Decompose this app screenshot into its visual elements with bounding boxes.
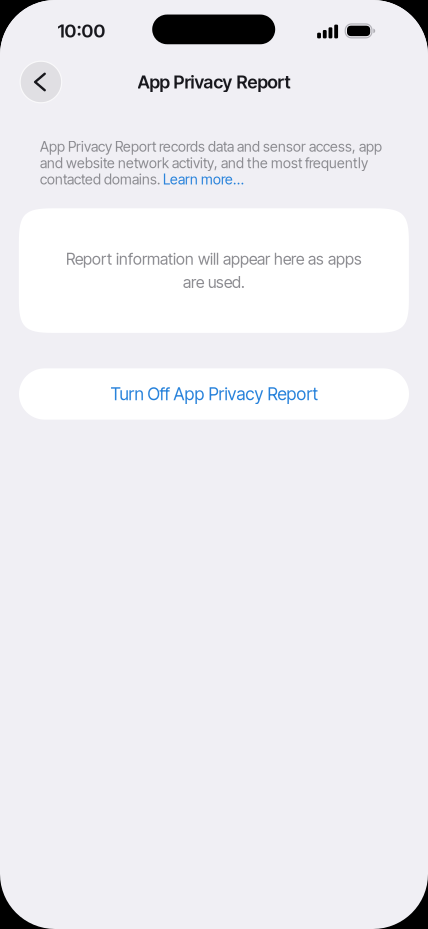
staticText: App Privacy Report: [137, 71, 290, 93]
staticText: and website network activity, and the mo…: [40, 154, 368, 171]
button[interactable]: Turn Off App Privacy Report: [19, 368, 409, 420]
staticText: are used.: [183, 273, 245, 292]
staticText: 10:00: [57, 19, 105, 42]
staticText: contacted domains.: [40, 171, 163, 188]
staticText: Turn Off App Privacy Report: [110, 383, 317, 404]
staticText: Report information will appear here as a…: [66, 249, 362, 268]
staticText: Learn more…: [163, 171, 244, 188]
button[interactable]: Learn more…: [163, 171, 244, 188]
button[interactable]: Back: [17, 58, 65, 106]
staticText: App Privacy Report records data and sens…: [40, 138, 382, 155]
